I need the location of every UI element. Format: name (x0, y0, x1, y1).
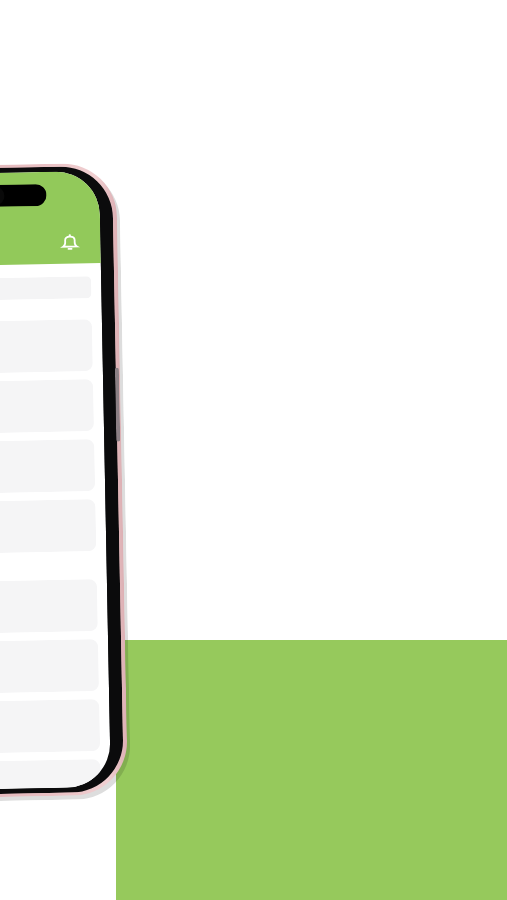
button[interactable]: Anar-hi (0, 759, 101, 791)
button[interactable]: Notificacions (52, 224, 87, 259)
button[interactable] (0, 276, 91, 302)
